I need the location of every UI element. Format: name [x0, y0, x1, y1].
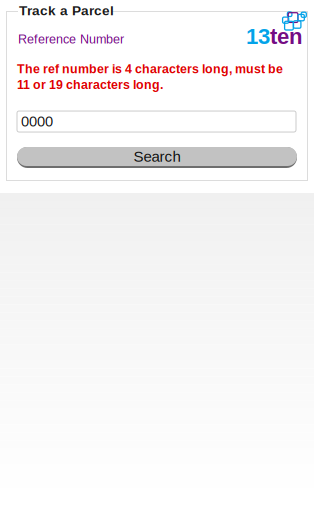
staticText: The ref number is 4 characters long, mus… [17, 62, 283, 76]
staticText: 0000 [21, 113, 53, 130]
button[interactable]: Search [17, 147, 297, 168]
staticText: Reference Number [18, 32, 124, 46]
staticText: ten [270, 24, 303, 49]
staticText: 11 or 19 characters long. [17, 78, 163, 92]
staticText: Search [133, 148, 180, 165]
staticText: 13 [246, 24, 270, 49]
staticText: Track a Parcel [19, 3, 114, 18]
button[interactable]: Reference Number [17, 111, 296, 132]
